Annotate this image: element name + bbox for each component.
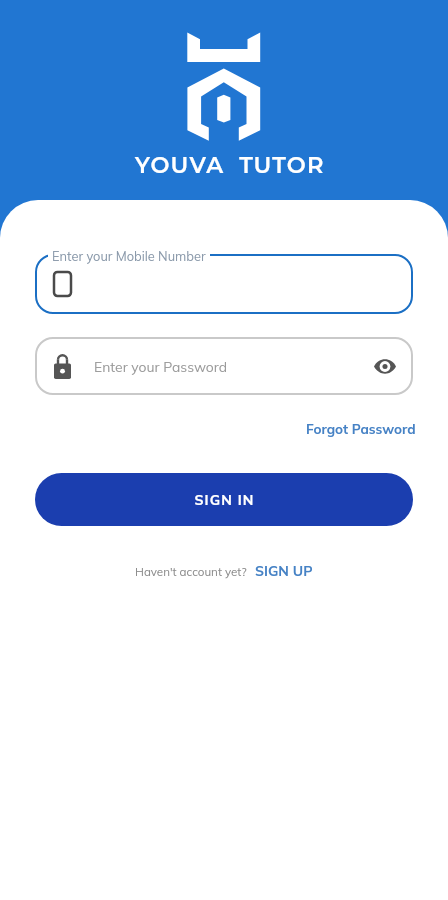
staticText: YOUVA TUTOR bbox=[135, 151, 325, 178]
button[interactable]: SIGN IN bbox=[35, 473, 413, 526]
button[interactable]: Enter your Password bbox=[35, 337, 413, 395]
staticText: Enter your Password bbox=[94, 358, 228, 375]
button[interactable] bbox=[35, 254, 413, 314]
button[interactable]: SIGN UP bbox=[255, 562, 313, 580]
staticText: SIGN UP bbox=[255, 562, 313, 580]
staticText: Enter your Mobile Number bbox=[52, 248, 206, 264]
button[interactable]: Show password bbox=[372, 353, 398, 379]
staticText: SIGN IN bbox=[194, 491, 255, 509]
staticText: Haven't account yet? bbox=[135, 564, 247, 579]
button[interactable]: Forgot Password bbox=[302, 416, 420, 441]
staticText: Forgot Password bbox=[306, 420, 416, 437]
